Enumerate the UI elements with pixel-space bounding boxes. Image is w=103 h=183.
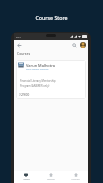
staticText: Account bbox=[71, 178, 80, 181]
staticText: 9:41 bbox=[16, 35, 21, 38]
staticText: Explore bbox=[47, 178, 55, 181]
button[interactable]: Home bbox=[14, 171, 38, 183]
button[interactable]: Varun Malhotra bbox=[16, 60, 86, 99]
staticText: Home bbox=[23, 178, 30, 181]
staticText: Financial Literacy Mentorship bbox=[20, 79, 56, 83]
staticText: Varun Malhotra bbox=[26, 63, 56, 68]
button[interactable]: Profile bbox=[80, 42, 86, 48]
staticText: ₹2900 bbox=[19, 92, 30, 97]
staticText: stock market learning bbox=[26, 68, 49, 71]
button[interactable]: Back bbox=[17, 43, 22, 48]
button[interactable]: Explore bbox=[38, 171, 63, 183]
staticText: Program (ANSWER only) bbox=[20, 84, 50, 88]
button[interactable]: Account bbox=[63, 171, 88, 183]
staticText: Course Store bbox=[35, 14, 68, 21]
button[interactable]: Search bbox=[72, 43, 77, 48]
staticText: Courses bbox=[17, 51, 31, 56]
